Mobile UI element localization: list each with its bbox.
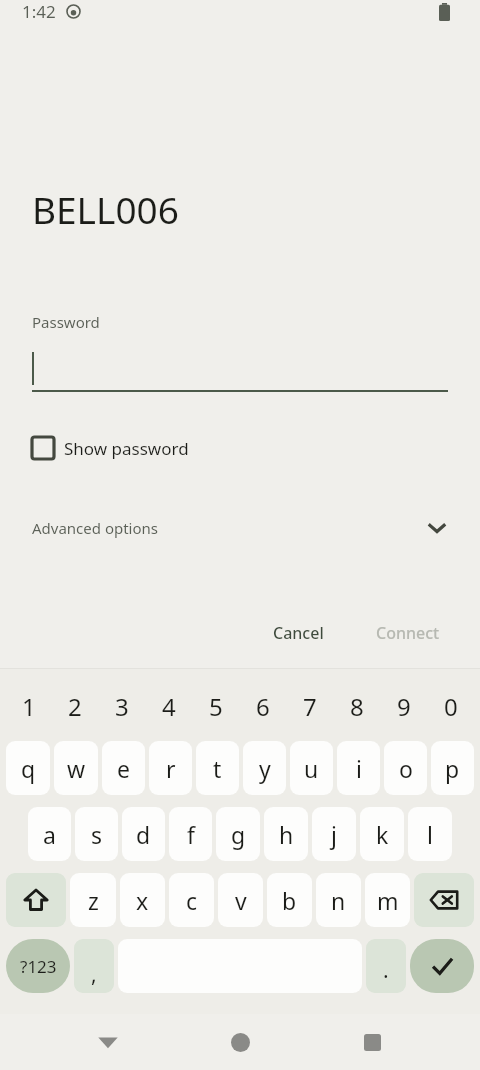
staticText: l bbox=[427, 819, 433, 850]
button[interactable]: 0 bbox=[427, 677, 474, 735]
staticText: y bbox=[259, 753, 271, 784]
staticText: k bbox=[376, 819, 389, 850]
button[interactable]: d bbox=[122, 807, 165, 861]
button[interactable]: . bbox=[366, 939, 406, 993]
button[interactable]: ?123 bbox=[6, 939, 70, 993]
staticText: b bbox=[282, 885, 297, 916]
button[interactable]: l bbox=[408, 807, 452, 861]
button[interactable]: t bbox=[196, 741, 239, 795]
staticText: h bbox=[279, 819, 294, 850]
staticText: r bbox=[166, 753, 176, 784]
button[interactable]: c bbox=[169, 873, 214, 927]
button[interactable]: s bbox=[75, 807, 118, 861]
staticText: t bbox=[213, 753, 222, 784]
staticText: 8 bbox=[350, 690, 364, 723]
button[interactable]: 5 bbox=[192, 677, 239, 735]
button[interactable]: 4 bbox=[145, 677, 192, 735]
button[interactable]: h bbox=[264, 807, 308, 861]
staticText: j bbox=[331, 819, 337, 850]
staticText: 1 bbox=[22, 690, 36, 723]
staticText: 7 bbox=[303, 690, 317, 723]
staticText: Cancel bbox=[273, 622, 324, 644]
staticText: v bbox=[235, 885, 247, 916]
button[interactable]: Shift bbox=[6, 873, 66, 927]
staticText: Password bbox=[32, 312, 100, 332]
button[interactable]: j bbox=[312, 807, 356, 861]
button[interactable]: g bbox=[216, 807, 260, 861]
button[interactable]: b bbox=[267, 873, 312, 927]
button[interactable]: Cancel bbox=[259, 614, 338, 652]
staticText: i bbox=[356, 753, 362, 784]
staticText: m bbox=[377, 885, 399, 916]
button[interactable]: Advanced options bbox=[32, 508, 448, 548]
button[interactable]: m bbox=[365, 873, 410, 927]
button[interactable]: f bbox=[169, 807, 212, 861]
staticText: 6 bbox=[256, 690, 270, 723]
staticText: c bbox=[186, 885, 198, 916]
button[interactable]: Show password bbox=[32, 430, 448, 466]
button[interactable]: 9 bbox=[380, 677, 427, 735]
button[interactable]: Back bbox=[84, 1018, 132, 1066]
staticText: s bbox=[91, 819, 103, 850]
staticText: 2 bbox=[68, 690, 82, 723]
button[interactable]: 7 bbox=[286, 677, 333, 735]
button[interactable]: 2 bbox=[52, 677, 98, 735]
staticText: Show password bbox=[64, 437, 189, 460]
button[interactable]: u bbox=[290, 741, 333, 795]
button[interactable]: 6 bbox=[239, 677, 286, 735]
button[interactable]: n bbox=[316, 873, 361, 927]
button[interactable]: Home bbox=[216, 1018, 264, 1066]
button[interactable]: Backspace bbox=[414, 873, 474, 927]
staticText: 4 bbox=[162, 690, 176, 723]
button[interactable]: 3 bbox=[98, 677, 145, 735]
staticText: BELL006 bbox=[32, 184, 179, 234]
staticText: Advanced options bbox=[32, 518, 159, 538]
staticText: 1:42 bbox=[22, 0, 56, 23]
button[interactable]: 1 bbox=[6, 677, 52, 735]
staticText: g bbox=[231, 819, 246, 850]
button[interactable]: x bbox=[120, 873, 165, 927]
button[interactable]: v bbox=[218, 873, 263, 927]
staticText: f bbox=[187, 819, 195, 850]
staticText: e bbox=[117, 753, 130, 784]
button[interactable]: , bbox=[74, 939, 114, 993]
staticText: a bbox=[43, 819, 56, 850]
staticText: 9 bbox=[397, 690, 411, 723]
staticText: o bbox=[399, 753, 413, 784]
button[interactable]: k bbox=[360, 807, 404, 861]
staticText: 0 bbox=[444, 690, 458, 723]
button[interactable]: y bbox=[243, 741, 286, 795]
staticText: x bbox=[136, 885, 149, 916]
button[interactable]: Connect bbox=[368, 614, 448, 652]
staticText: ?123 bbox=[20, 955, 57, 978]
staticText: u bbox=[304, 753, 319, 784]
staticText: w bbox=[67, 753, 86, 784]
staticText: 3 bbox=[115, 690, 129, 723]
button[interactable]: r bbox=[149, 741, 192, 795]
button[interactable]: e bbox=[102, 741, 145, 795]
button[interactable]: z bbox=[70, 873, 116, 927]
button[interactable]: a bbox=[28, 807, 71, 861]
button[interactable]: o bbox=[384, 741, 427, 795]
staticText: . bbox=[383, 956, 389, 985]
staticText: q bbox=[21, 753, 36, 784]
staticText: Connect bbox=[376, 622, 440, 644]
button[interactable]: q bbox=[6, 741, 50, 795]
button[interactable]: Recents bbox=[348, 1018, 396, 1066]
staticText: z bbox=[88, 885, 99, 916]
button[interactable]: p bbox=[431, 741, 474, 795]
button[interactable]: 8 bbox=[333, 677, 380, 735]
staticText: , bbox=[91, 960, 97, 989]
button[interactable]: i bbox=[337, 741, 380, 795]
staticText: p bbox=[445, 753, 460, 784]
staticText: d bbox=[136, 819, 151, 850]
button[interactable]: w bbox=[54, 741, 98, 795]
staticText: n bbox=[331, 885, 346, 916]
button[interactable]: Enter bbox=[410, 939, 474, 993]
staticText: 5 bbox=[209, 690, 223, 723]
